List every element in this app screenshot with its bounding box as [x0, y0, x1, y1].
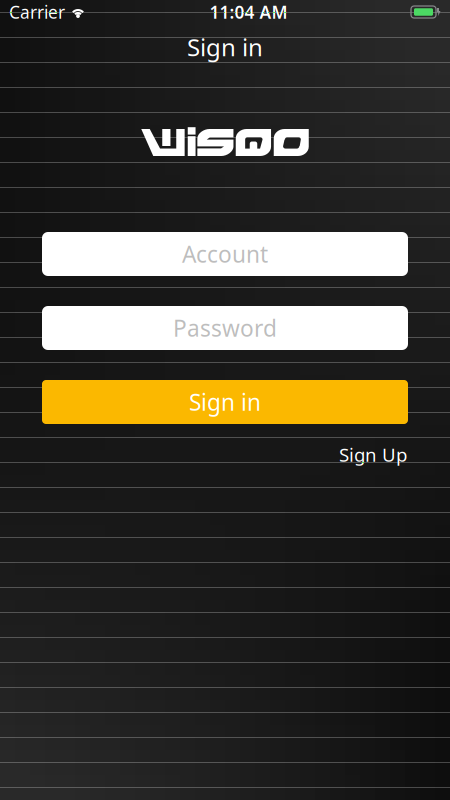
button[interactable]: Sign in	[0, 380, 450, 424]
button[interactable]: Sign Up	[339, 442, 407, 467]
staticText: Sign in	[187, 31, 263, 63]
staticText: Account	[182, 239, 268, 269]
staticText: Password	[173, 313, 277, 343]
staticText: Sign in	[189, 387, 261, 417]
staticText: Carrier	[9, 0, 65, 23]
staticText: Sign Up	[339, 442, 407, 467]
staticText: 11:04 AM	[209, 0, 287, 23]
